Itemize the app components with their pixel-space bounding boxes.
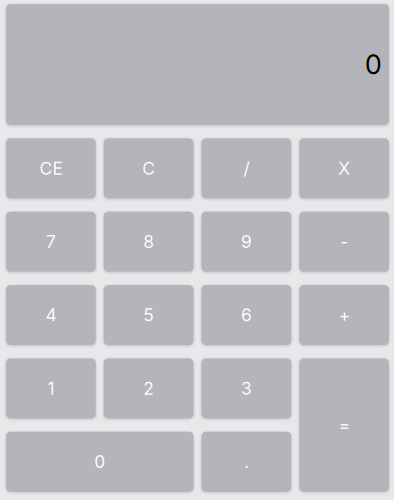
staticText: 8 <box>143 231 154 252</box>
button[interactable]: 9 <box>201 212 291 272</box>
button[interactable]: - <box>299 212 389 272</box>
staticText: 3 <box>241 378 252 399</box>
staticText: 0 <box>94 451 105 472</box>
button[interactable]: / <box>201 138 291 198</box>
staticText: . <box>244 451 249 472</box>
staticText: 9 <box>241 231 252 252</box>
staticText: + <box>339 305 350 326</box>
staticText: / <box>243 158 249 179</box>
button[interactable]: 8 <box>104 212 194 272</box>
button[interactable]: 0 <box>6 432 193 492</box>
button[interactable]: 5 <box>104 285 194 345</box>
button[interactable]: + <box>299 285 389 345</box>
staticText: 1 <box>47 378 54 399</box>
button[interactable]: 2 <box>104 358 194 418</box>
button[interactable]: 7 <box>6 212 96 272</box>
staticText: 7 <box>46 231 56 252</box>
staticText: = <box>339 415 350 436</box>
button[interactable]: 4 <box>6 285 96 345</box>
staticText: 6 <box>241 305 252 326</box>
staticText: X <box>338 158 350 179</box>
button[interactable]: C <box>104 138 194 198</box>
button[interactable]: 3 <box>201 358 291 418</box>
staticText: - <box>340 231 348 252</box>
staticText: CE <box>39 158 62 179</box>
staticText: 2 <box>143 378 154 399</box>
staticText: C <box>142 158 155 179</box>
button[interactable]: = <box>299 358 389 492</box>
button[interactable]: 6 <box>201 285 291 345</box>
staticText: 0 <box>365 48 382 81</box>
staticText: 4 <box>45 305 56 326</box>
button[interactable]: CE <box>6 138 96 198</box>
staticText: 5 <box>143 305 154 326</box>
button[interactable]: X <box>299 138 389 198</box>
button[interactable]: 1 <box>6 358 96 418</box>
